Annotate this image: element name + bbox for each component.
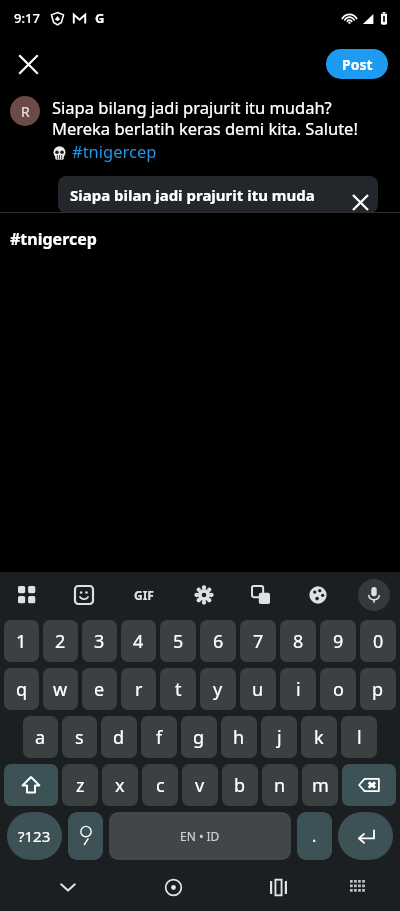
staticText: 1 [16, 629, 27, 654]
staticText: v [195, 773, 205, 798]
staticText: w [53, 677, 68, 702]
button[interactable]: w [43, 668, 78, 710]
button[interactable]: m [302, 764, 338, 806]
staticText: 2 [55, 629, 66, 654]
button[interactable]: Apps [10, 578, 44, 612]
button[interactable]: Close [8, 44, 48, 84]
button[interactable]: g [181, 716, 217, 758]
button[interactable]: Enter [338, 812, 393, 860]
button[interactable]: j [261, 716, 297, 758]
button[interactable]: 2 [43, 620, 78, 662]
button[interactable]: GIF [124, 575, 164, 615]
button[interactable]: a [23, 716, 58, 758]
button[interactable]: Shift [4, 764, 58, 806]
button[interactable]: v [182, 764, 218, 806]
staticText: x [115, 773, 125, 798]
button[interactable]: r [121, 668, 156, 710]
button[interactable]: 9 [320, 620, 356, 662]
button[interactable]: Back [47, 866, 89, 908]
button[interactable]: i [280, 668, 316, 710]
staticText: 4 [133, 629, 144, 654]
staticText: 9:17 [14, 9, 40, 27]
staticText: i [296, 677, 301, 702]
button[interactable]: z [62, 764, 98, 806]
button[interactable]: Dismiss suggestion [344, 186, 376, 218]
button[interactable]: s [62, 716, 97, 758]
button[interactable]: u [240, 668, 276, 710]
staticText: t [175, 677, 182, 702]
button[interactable]: q [4, 668, 39, 710]
button[interactable]: e [82, 668, 117, 710]
staticText: j [277, 725, 282, 750]
button[interactable]: 4 [121, 620, 156, 662]
button[interactable]: Post [326, 49, 388, 79]
button[interactable]: . [297, 812, 332, 860]
staticText: G [95, 9, 105, 27]
staticText: n [274, 773, 286, 798]
button[interactable]: 3 [82, 620, 117, 662]
staticText: e [94, 677, 105, 702]
staticText: 5 [173, 629, 184, 654]
button[interactable]: ?123 [7, 812, 62, 860]
button[interactable]: Settings [187, 578, 221, 612]
button[interactable]: Home [152, 866, 194, 908]
button[interactable]: Voice input [358, 579, 390, 611]
button[interactable]: 8 [280, 620, 316, 662]
staticText: m [312, 773, 329, 798]
button[interactable]: c [142, 764, 178, 806]
staticText: d [113, 725, 125, 750]
button[interactable]: Siapa bilan jadi prajurit itu muda [58, 176, 378, 213]
button[interactable]: 5 [160, 620, 196, 662]
button[interactable]: h [221, 716, 257, 758]
button[interactable]: Switch keyboard [337, 867, 377, 907]
button[interactable]: x [102, 764, 138, 806]
button[interactable]: l [341, 716, 377, 758]
staticText: 9 [333, 629, 344, 654]
button[interactable]: y [200, 668, 236, 710]
staticText: GIF [134, 587, 154, 603]
staticText: g [193, 725, 205, 750]
button[interactable]: 1 [4, 620, 39, 662]
staticText: k [314, 725, 324, 750]
button[interactable]: Stickers [67, 578, 101, 612]
staticText: h [233, 725, 245, 750]
button[interactable]: 6 [200, 620, 236, 662]
staticText: o [333, 677, 344, 702]
staticText: Siapa bilang jadi prajurit itu mudah? Me… [52, 96, 358, 140]
button[interactable]: Profile [10, 96, 40, 126]
staticText: y [213, 677, 223, 702]
staticText: u [252, 677, 264, 702]
staticText: 8 [293, 629, 304, 654]
staticText: #tnigercep [10, 228, 97, 250]
button[interactable]: Emoji [68, 812, 103, 860]
button[interactable]: 0 [360, 620, 396, 662]
staticText: p [372, 677, 384, 702]
staticText: a [35, 725, 46, 750]
button[interactable]: Recent apps [257, 866, 299, 908]
staticText: 3 [94, 629, 105, 654]
button[interactable]: 7 [240, 620, 276, 662]
staticText: R [21, 102, 30, 121]
staticText: EN • ID [180, 828, 220, 844]
staticText: Post [342, 55, 373, 74]
staticText: 6 [213, 629, 224, 654]
button[interactable]: Translate [244, 578, 278, 612]
staticText: l [357, 725, 362, 750]
button[interactable]: b [222, 764, 258, 806]
staticText: q [16, 677, 28, 702]
button[interactable]: Themes [301, 578, 335, 612]
button[interactable]: k [301, 716, 337, 758]
button[interactable]: p [360, 668, 396, 710]
staticText: ?123 [18, 826, 51, 846]
button[interactable]: f [141, 716, 177, 758]
staticText: b [234, 773, 246, 798]
staticText: . [312, 825, 317, 847]
button[interactable]: o [320, 668, 356, 710]
button[interactable]: Backspace [342, 764, 396, 806]
button[interactable]: t [160, 668, 196, 710]
button[interactable]: n [262, 764, 298, 806]
staticText: r [135, 677, 143, 702]
button[interactable]: d [101, 716, 137, 758]
staticText: 0 [373, 629, 384, 654]
button[interactable]: Space [109, 812, 291, 860]
